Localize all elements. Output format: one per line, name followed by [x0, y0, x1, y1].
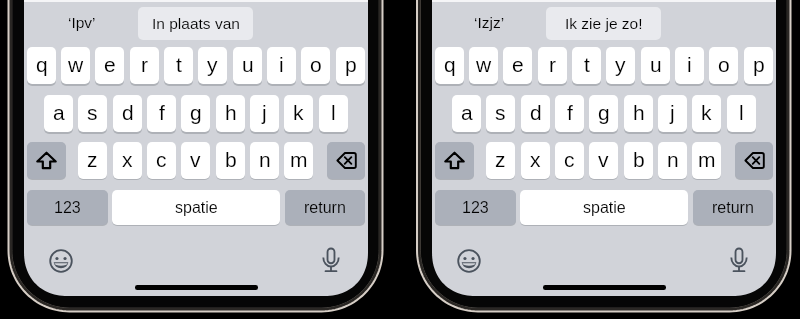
staticText: return — [304, 199, 346, 217]
button[interactable]: w — [469, 47, 498, 84]
staticText: Ik zie je zo! — [565, 15, 643, 32]
staticText: c — [564, 148, 575, 171]
staticText: l — [739, 101, 744, 124]
button[interactable]: r — [130, 47, 159, 84]
button[interactable]: l — [727, 95, 756, 132]
button[interactable]: Shift — [435, 142, 474, 179]
button[interactable]: ‘Izjz’ — [432, 0, 547, 45]
button[interactable]: a — [452, 95, 481, 132]
button[interactable]: q — [27, 47, 56, 84]
staticText: t — [176, 53, 182, 76]
button[interactable]: k — [284, 95, 313, 132]
staticText: j — [262, 101, 267, 124]
button[interactable]: return — [285, 190, 365, 225]
staticText: c — [156, 148, 167, 171]
button[interactable]: Backspace — [735, 142, 773, 179]
button[interactable]: h — [624, 95, 653, 132]
staticText: ‘Izjz’ — [474, 14, 505, 31]
staticText: l — [331, 101, 336, 124]
button[interactable]: 123 — [435, 190, 516, 225]
button[interactable]: g — [589, 95, 618, 132]
button[interactable]: i — [675, 47, 704, 84]
button[interactable]: u — [641, 47, 670, 84]
button[interactable]: d — [113, 95, 142, 132]
staticText: 123 — [54, 199, 81, 217]
staticText: i — [279, 53, 284, 76]
button[interactable]: Shift — [27, 142, 66, 179]
button[interactable]: 123 — [27, 190, 108, 225]
button[interactable]: Ik zie je zo! — [546, 7, 661, 40]
button[interactable]: i — [267, 47, 296, 84]
staticText: ‘Ipv’ — [68, 14, 96, 31]
button[interactable]: n — [250, 142, 279, 179]
button[interactable]: Emoji keyboard — [37, 237, 85, 285]
button[interactable]: j — [250, 95, 279, 132]
staticText: u — [650, 53, 662, 76]
staticText: h — [633, 101, 645, 124]
button[interactable]: y — [198, 47, 227, 84]
button[interactable]: c — [555, 142, 584, 179]
staticText: f — [567, 101, 573, 124]
button[interactable]: o — [301, 47, 330, 84]
button[interactable]: n — [658, 142, 687, 179]
button[interactable]: Dictation — [715, 237, 763, 285]
button[interactable]: c — [147, 142, 176, 179]
button[interactable]: b — [624, 142, 653, 179]
button[interactable]: u — [233, 47, 262, 84]
button[interactable]: t — [572, 47, 601, 84]
button[interactable]: In plaats van — [138, 7, 253, 40]
button[interactable]: g — [181, 95, 210, 132]
button[interactable]: r — [538, 47, 567, 84]
button[interactable]: ‘Ipv’ — [24, 0, 139, 45]
button[interactable]: return — [693, 190, 773, 225]
button[interactable]: k — [692, 95, 721, 132]
button[interactable]: spatie — [520, 190, 688, 225]
button[interactable]: spatie — [112, 190, 280, 225]
button[interactable]: a — [44, 95, 73, 132]
button[interactable]: m — [692, 142, 721, 179]
button[interactable]: t — [164, 47, 193, 84]
button[interactable]: w — [61, 47, 90, 84]
button[interactable]: y — [606, 47, 635, 84]
button[interactable]: h — [216, 95, 245, 132]
staticText: s — [495, 101, 506, 124]
button[interactable]: j — [658, 95, 687, 132]
button[interactable]: s — [486, 95, 515, 132]
button[interactable]: x — [113, 142, 142, 179]
staticText: x — [122, 148, 133, 171]
button[interactable]: v — [589, 142, 618, 179]
button[interactable]: Backspace — [327, 142, 365, 179]
staticText: h — [225, 101, 237, 124]
button[interactable]: p — [744, 47, 773, 84]
button[interactable]: Dictation — [307, 237, 355, 285]
button[interactable]: l — [319, 95, 348, 132]
staticText: f — [159, 101, 165, 124]
button[interactable]: o — [709, 47, 738, 84]
button[interactable]: e — [503, 47, 532, 84]
button[interactable]: x — [521, 142, 550, 179]
button[interactable]: z — [78, 142, 107, 179]
staticText: v — [598, 148, 609, 171]
button[interactable]: v — [181, 142, 210, 179]
button[interactable]: e — [95, 47, 124, 84]
button[interactable]: f — [555, 95, 584, 132]
button[interactable]: q — [435, 47, 464, 84]
staticText: a — [53, 101, 65, 124]
staticText: o — [718, 53, 730, 76]
staticText: u — [242, 53, 254, 76]
button[interactable]: p — [336, 47, 365, 84]
staticText: m — [698, 148, 716, 171]
button[interactable]: f — [147, 95, 176, 132]
button[interactable]: b — [216, 142, 245, 179]
button[interactable]: d — [521, 95, 550, 132]
staticText: e — [104, 53, 116, 76]
staticText: d — [122, 101, 134, 124]
staticText: q — [444, 53, 456, 76]
staticText: p — [753, 53, 765, 76]
button[interactable]: z — [486, 142, 515, 179]
staticText: n — [667, 148, 679, 171]
staticText: m — [290, 148, 308, 171]
button[interactable]: m — [284, 142, 313, 179]
button[interactable]: Emoji keyboard — [445, 237, 493, 285]
button[interactable]: s — [78, 95, 107, 132]
